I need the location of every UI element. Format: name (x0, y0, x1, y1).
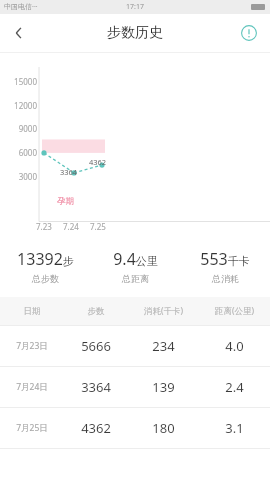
staticText: 234 (128, 337, 199, 355)
staticText: 9000 (5, 123, 37, 134)
staticText: 5666 (64, 337, 128, 355)
button[interactable]: 7月23日 (0, 325, 270, 366)
staticText: 7.24 (63, 221, 79, 232)
staticText: 17:17 (126, 2, 144, 12)
button[interactable]: 9.4公里 (90, 248, 180, 284)
staticText: 15000 (5, 76, 37, 87)
staticText: 步数 (64, 306, 128, 317)
staticText: 7月23日 (0, 340, 64, 352)
button[interactable]: 553千卡 (180, 248, 270, 284)
staticText: 距离(公里) (199, 305, 270, 317)
staticText: 7.23 (36, 221, 52, 232)
staticText: 步数历史 (107, 24, 163, 42)
staticText: 总距离 (122, 273, 149, 284)
staticText: 4362 (64, 419, 128, 437)
staticText: 7月24日 (0, 381, 64, 393)
staticText: 3364 (64, 378, 128, 396)
button[interactable]: Back (0, 14, 38, 52)
button[interactable]: 7月24日 (0, 366, 270, 407)
staticText: 日期 (0, 306, 64, 317)
staticText: 总消耗 (212, 273, 239, 284)
staticText: 总步数 (32, 273, 59, 284)
staticText: 消耗(千卡) (128, 305, 199, 317)
staticText: 孕期 (57, 196, 74, 207)
staticText: 3364 (60, 167, 78, 177)
staticText: 2.4 (199, 378, 270, 396)
staticText: 13392步 (17, 248, 74, 270)
staticText: 139 (128, 378, 199, 396)
button[interactable]: Info (236, 20, 262, 46)
staticText: 180 (128, 419, 199, 437)
staticText: 553千卡 (200, 248, 250, 270)
button[interactable]: 7月25日 (0, 407, 270, 448)
staticText: 6000 (5, 147, 37, 158)
staticText: 4362 (89, 157, 107, 167)
staticText: 中国电信··· (4, 2, 38, 12)
button[interactable]: 13392步 (0, 248, 90, 284)
staticText: 7月25日 (0, 422, 64, 434)
staticText: 3000 (5, 171, 37, 182)
staticText: 9.4公里 (113, 248, 158, 270)
staticText: 4.0 (199, 337, 270, 355)
staticText: 7.25 (90, 221, 106, 232)
staticText: 3.1 (199, 419, 270, 437)
staticText: 12000 (5, 100, 37, 111)
